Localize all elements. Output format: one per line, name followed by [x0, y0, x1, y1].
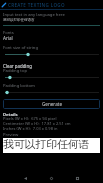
staticText: Preview: [3, 132, 19, 138]
staticText: Font size of string: [3, 45, 38, 51]
staticText: Fonts: [3, 30, 14, 36]
button[interactable]: Home: [43, 170, 59, 183]
staticText: Clear padding: [3, 63, 32, 69]
button[interactable]: CREATE TEXTING LOGO: [1, 0, 103, 9]
staticText: Padding bottom: [3, 83, 35, 89]
button[interactable]: Generate: [3, 99, 100, 109]
staticText: 我可以打印任何语言: [3, 138, 100, 153]
staticText: Arial: [3, 35, 13, 41]
staticText: Padding top: [3, 68, 27, 74]
button[interactable]: [3, 76, 100, 79]
button[interactable]: Back: [17, 170, 33, 183]
button[interactable]: [3, 53, 100, 56]
staticText: Input text in any language here: [3, 12, 65, 18]
button[interactable]: Recent apps: [69, 170, 85, 183]
staticText: Centimeter (W x H): 17.81 x 2.51 cm: [3, 121, 71, 126]
staticText: Pixels (W x H): 675 x 94 pixel: [3, 116, 57, 121]
staticText: 我可以打印任何语言: [3, 18, 35, 22]
staticText: Generate: [42, 101, 62, 107]
button[interactable]: [3, 91, 100, 94]
staticText: CREATE TEXTING LOGO: [8, 2, 65, 8]
staticText: Inches (W x H): 7.03 x 0.98 in: [3, 126, 58, 131]
staticText: Details: [3, 112, 18, 118]
